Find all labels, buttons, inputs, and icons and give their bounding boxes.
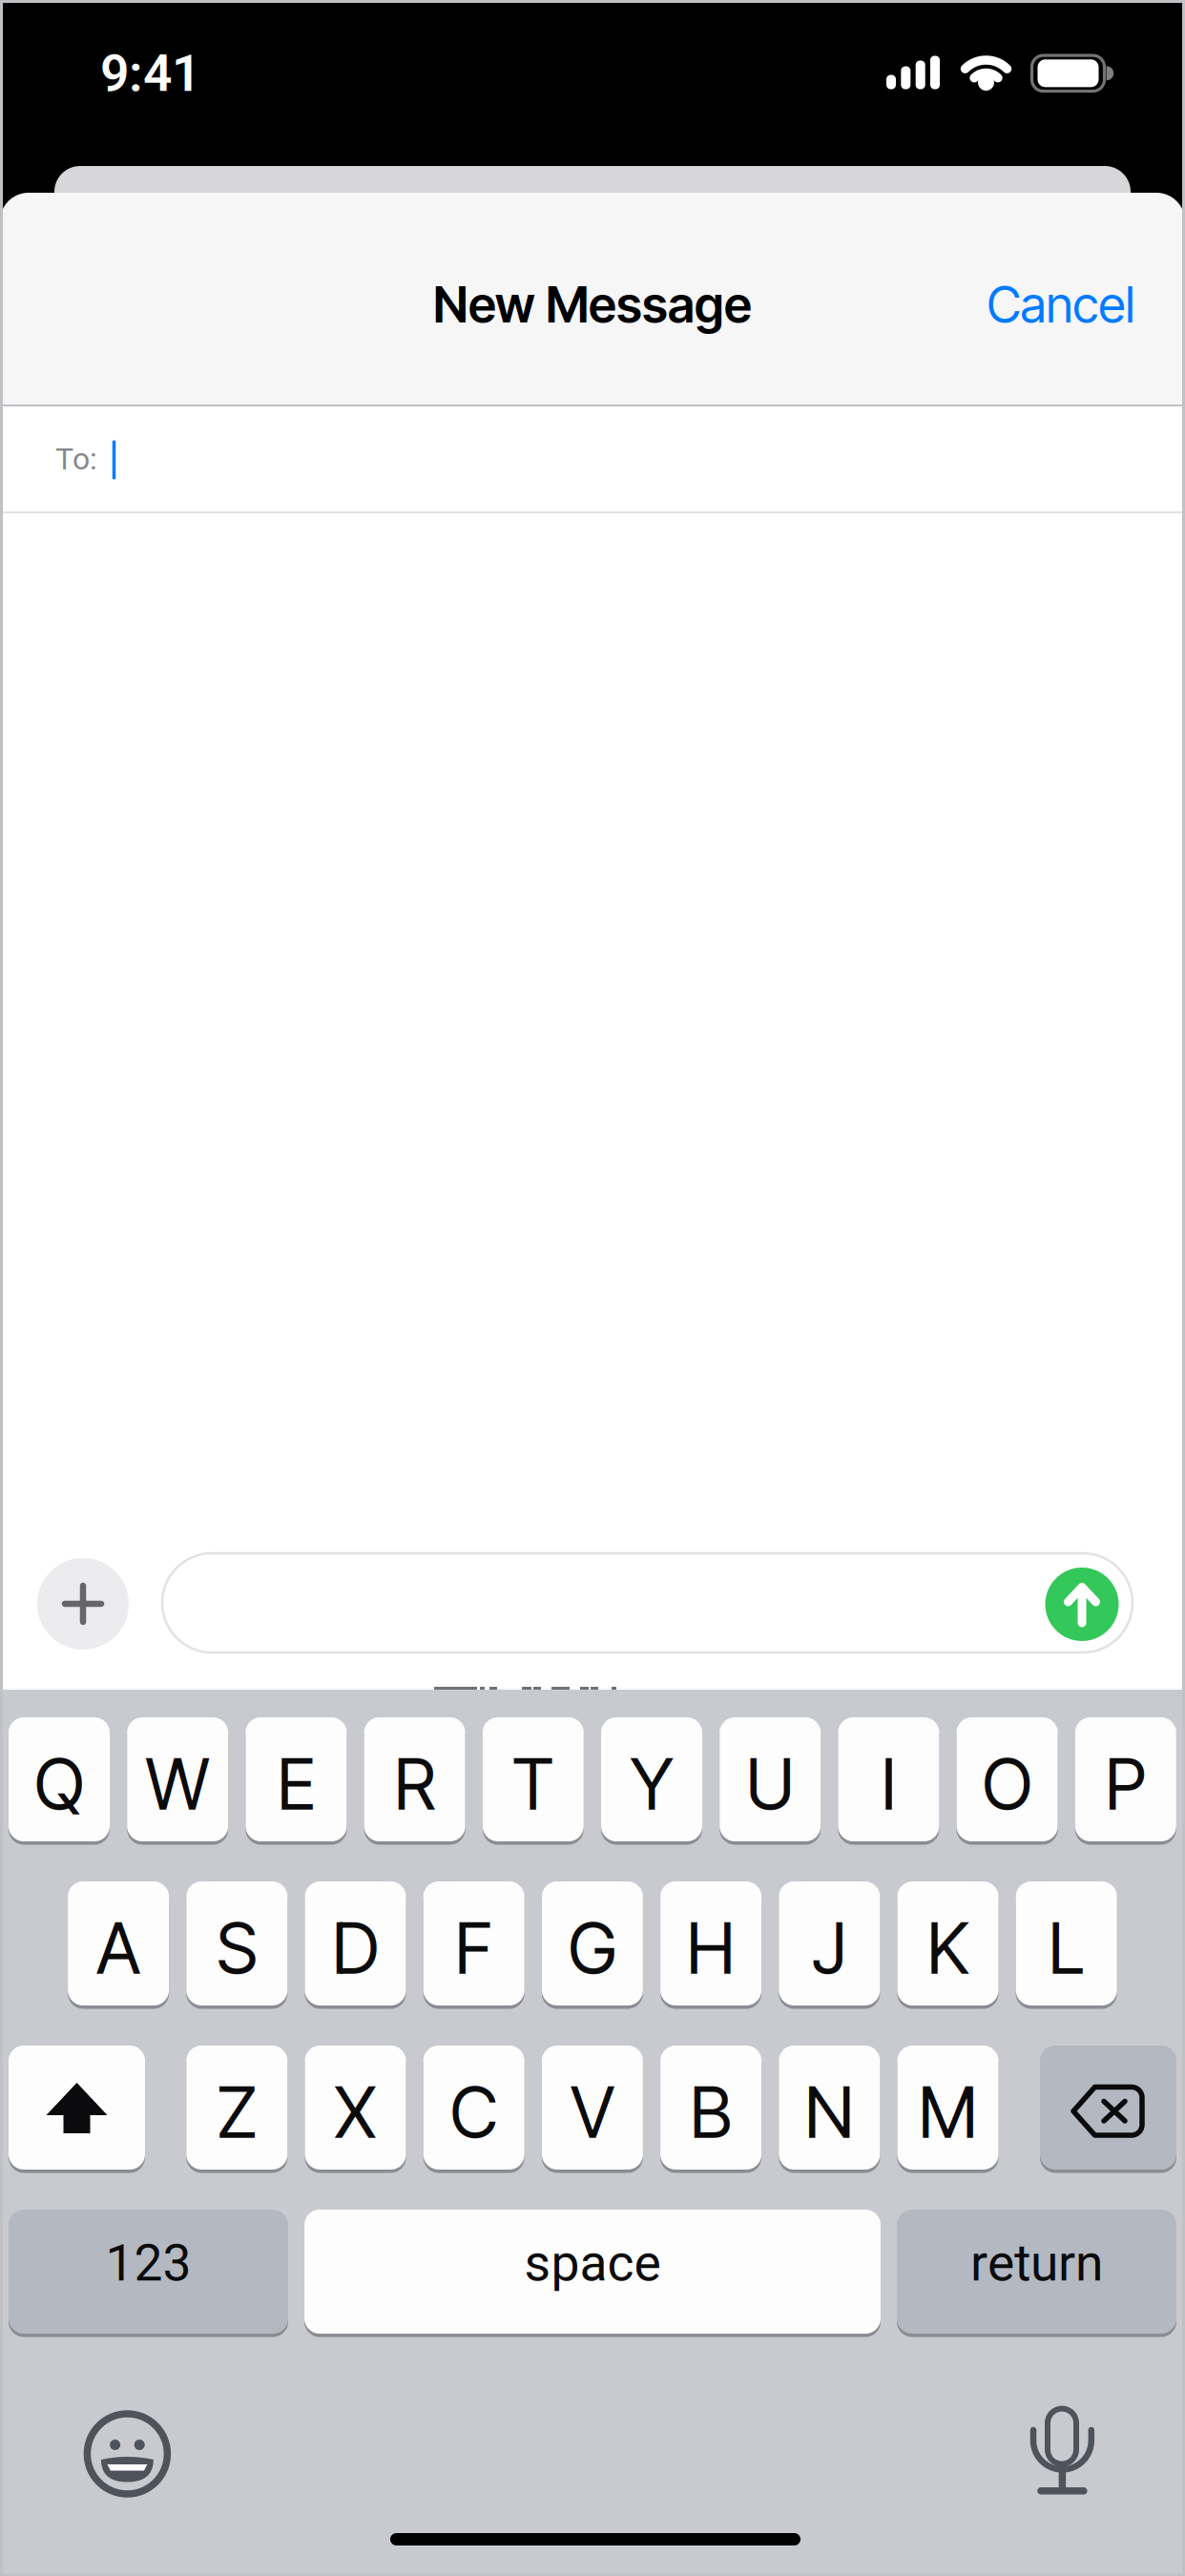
button[interactable]: F [423, 1881, 524, 2005]
button[interactable]: D [305, 1881, 406, 2005]
staticText: U [746, 1742, 794, 1826]
button[interactable]: O [957, 1717, 1058, 1841]
staticText: S [216, 1906, 257, 1990]
button[interactable]: S [186, 1881, 287, 2005]
staticText: W [146, 1742, 210, 1826]
staticText: To: [55, 441, 97, 477]
staticText: A [96, 1906, 140, 1990]
staticText: L [1048, 1906, 1085, 1990]
button[interactable]: R [364, 1717, 465, 1841]
button[interactable]: Apps [37, 1558, 129, 1650]
button[interactable]: T [483, 1717, 584, 1841]
button[interactable]: Shift [9, 2046, 145, 2170]
staticText: F [455, 1906, 493, 1990]
staticText: H [687, 1906, 735, 1990]
staticText: C [450, 2070, 498, 2155]
button[interactable]: J [779, 1881, 880, 2005]
button[interactable]: C [423, 2046, 524, 2170]
button[interactable]: Dictation [1005, 2392, 1120, 2506]
staticText: Q [34, 1742, 84, 1826]
button[interactable]: V [542, 2046, 643, 2170]
staticText: Cancel [987, 274, 1135, 334]
staticText: T [512, 1742, 554, 1826]
staticText: I [881, 1742, 896, 1826]
button[interactable]: Cancel [987, 274, 1135, 334]
staticText: P [1105, 1742, 1146, 1826]
button[interactable]: E [246, 1717, 347, 1841]
staticText: G [568, 1906, 617, 1990]
button[interactable]: K [897, 1881, 998, 2005]
staticText: R [394, 1742, 435, 1826]
button[interactable]: N [779, 2046, 880, 2170]
button[interactable]: X [305, 2046, 406, 2170]
button[interactable]: Y [601, 1717, 702, 1841]
button[interactable]: U [720, 1717, 821, 1841]
staticText: N [805, 2070, 854, 2155]
staticText: E [277, 1742, 315, 1826]
button[interactable]: A [68, 1881, 169, 2005]
staticText: space [524, 2233, 661, 2293]
staticText: D [332, 1906, 379, 1990]
staticText: X [334, 2070, 376, 2155]
staticText: Z [217, 2070, 257, 2155]
button[interactable]: Emoji [75, 2401, 180, 2506]
staticText: K [927, 1906, 969, 1990]
button[interactable]: I [838, 1717, 939, 1841]
staticText: V [570, 2070, 614, 2155]
button[interactable]: Z [186, 2046, 287, 2170]
button[interactable]: H [660, 1881, 761, 2005]
button[interactable]: Delete [1040, 2046, 1176, 2170]
staticText: B [690, 2070, 732, 2155]
button[interactable]: B [660, 2046, 761, 2170]
button[interactable]: G [542, 1881, 643, 2005]
staticText: J [812, 1906, 847, 1990]
staticText: New Message [433, 274, 752, 334]
staticText: Y [630, 1742, 673, 1826]
staticText: M [918, 2070, 977, 2155]
staticText: O [982, 1742, 1032, 1826]
button[interactable]: L [1016, 1881, 1117, 2005]
staticText: return [970, 2233, 1103, 2293]
button[interactable]: W [127, 1717, 228, 1841]
button[interactable]: Q [9, 1717, 110, 1841]
button[interactable]: space [304, 2210, 881, 2334]
button[interactable]: Numbers [9, 2210, 288, 2334]
staticText: 123 [105, 2233, 191, 2293]
staticText: 9:41 [100, 44, 200, 103]
button[interactable]: Send [1045, 1568, 1119, 1641]
button[interactable]: return [897, 2210, 1176, 2334]
button[interactable]: M [897, 2046, 998, 2170]
button[interactable]: P [1075, 1717, 1176, 1841]
